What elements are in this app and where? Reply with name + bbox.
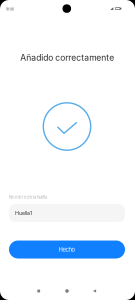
button[interactable]: Recientes [26,282,52,300]
staticText: Nombre de la huella [9,195,47,200]
staticText: Huella1 [15,210,32,216]
staticText: Añadido correctamente [20,52,114,63]
staticText: 18:06 [6,7,14,11]
button[interactable]: Atrás [81,282,107,300]
button[interactable]: Inicio [54,282,80,300]
button[interactable]: Hecho [9,240,125,258]
button[interactable]: Huella1 [9,204,125,222]
staticText: Hecho [58,246,75,253]
